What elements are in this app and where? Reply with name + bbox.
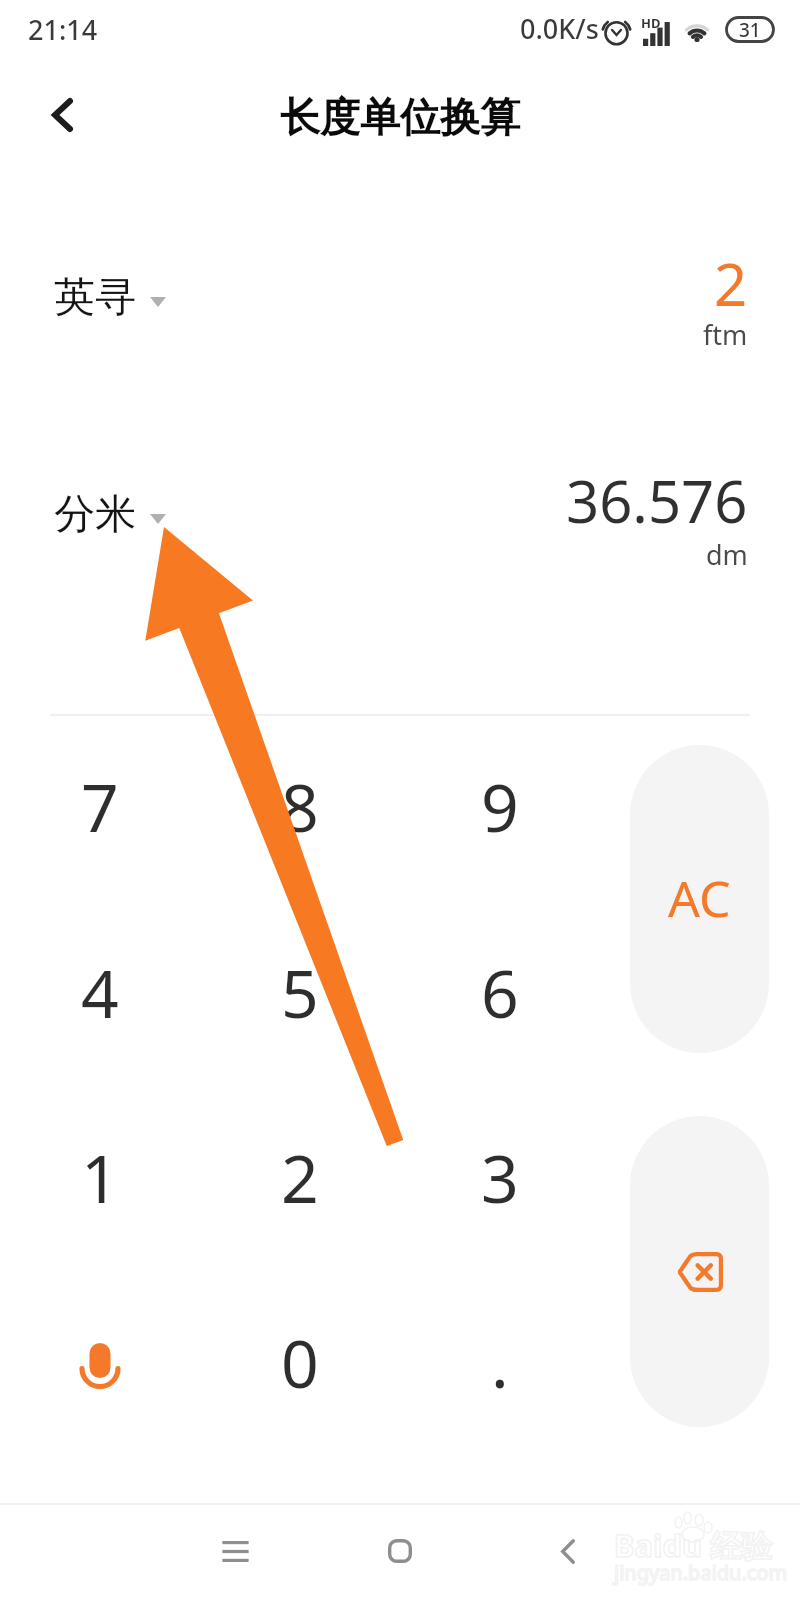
staticText: 1 — [81, 1132, 119, 1222]
staticText: AC — [668, 864, 731, 932]
button[interactable]: 8 — [208, 714, 392, 898]
button[interactable]: Backspace — [630, 1116, 769, 1427]
button[interactable]: 2 — [208, 1085, 392, 1269]
button[interactable]: 英寻 — [24, 254, 324, 330]
button[interactable]: Home — [360, 1511, 440, 1591]
staticText: 36.576 — [566, 461, 748, 540]
button[interactable]: 6 — [408, 900, 592, 1084]
staticText: 0 — [281, 1317, 319, 1407]
button[interactable]: 分米 — [24, 471, 324, 547]
staticText: 31 — [739, 17, 761, 43]
button[interactable]: . — [408, 1270, 592, 1454]
staticText: 0.0K/s — [520, 10, 599, 47]
staticText: 分米 — [54, 489, 136, 541]
staticText: 英寻 — [54, 272, 136, 324]
button[interactable]: 3 — [408, 1085, 592, 1269]
staticText: dm — [706, 536, 748, 573]
staticText: 8 — [281, 761, 319, 851]
staticText: 9 — [481, 761, 519, 851]
button[interactable]: AC — [630, 745, 769, 1053]
staticText: 5 — [281, 947, 319, 1037]
button[interactable]: Voice input — [8, 1270, 192, 1454]
staticText: ftm — [703, 316, 748, 353]
staticText: Baidu 经验 — [614, 1524, 773, 1566]
staticText: . — [491, 1317, 509, 1407]
button[interactable]: 4 — [8, 900, 192, 1084]
staticText: 2 — [281, 1132, 319, 1222]
button[interactable]: 7 — [8, 714, 192, 898]
button[interactable]: 5 — [208, 900, 392, 1084]
button[interactable]: 9 — [408, 714, 592, 898]
staticText: 6 — [481, 947, 519, 1037]
button[interactable]: Recents — [195, 1511, 275, 1591]
staticText: 21:14 — [28, 11, 98, 48]
button[interactable]: 0 — [208, 1270, 392, 1454]
staticText: HD — [641, 14, 661, 32]
staticText: 7 — [81, 761, 119, 851]
button[interactable]: Back — [30, 83, 94, 147]
button[interactable]: 1 — [8, 1085, 192, 1269]
staticText: 2 — [714, 244, 748, 323]
button[interactable]: Back — [528, 1511, 608, 1591]
staticText: 长度单位换算 — [280, 92, 520, 142]
staticText: 3 — [481, 1132, 519, 1222]
staticText: jingyan.baidu.com — [614, 1559, 788, 1586]
staticText: 4 — [81, 947, 119, 1037]
